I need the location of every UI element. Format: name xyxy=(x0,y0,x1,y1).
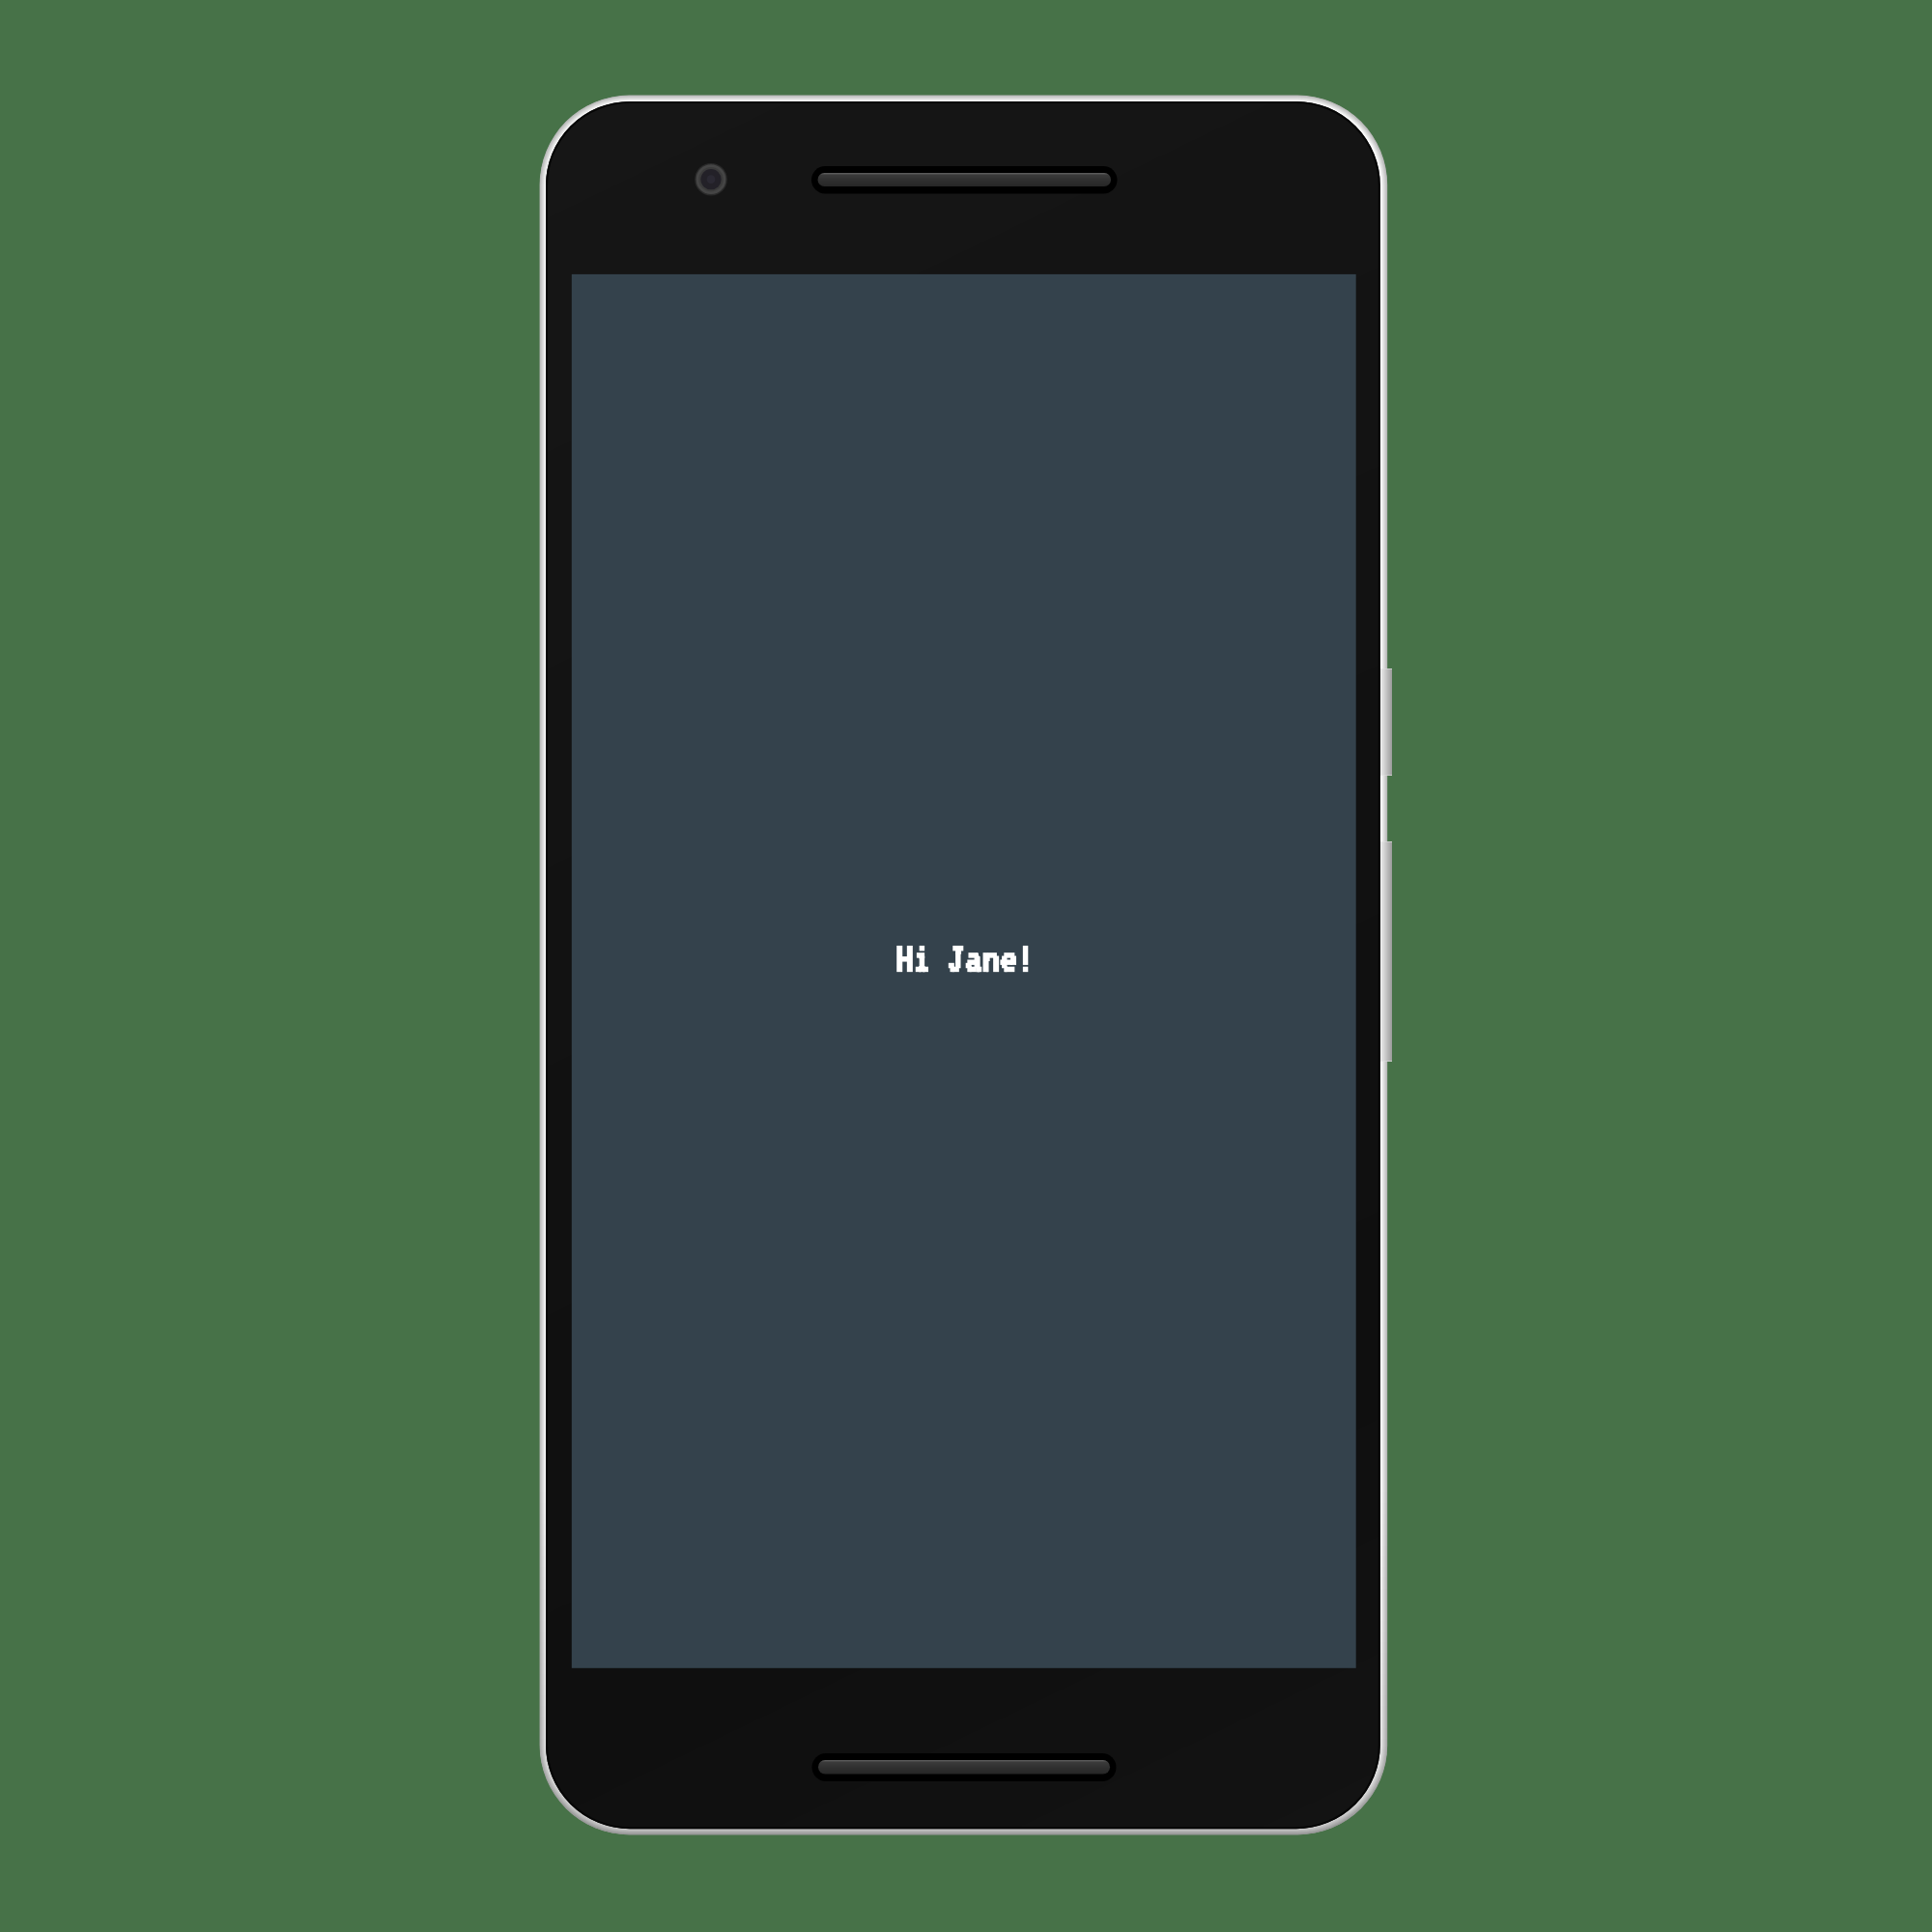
button[interactable]: Hi Jane! xyxy=(572,274,1356,1668)
